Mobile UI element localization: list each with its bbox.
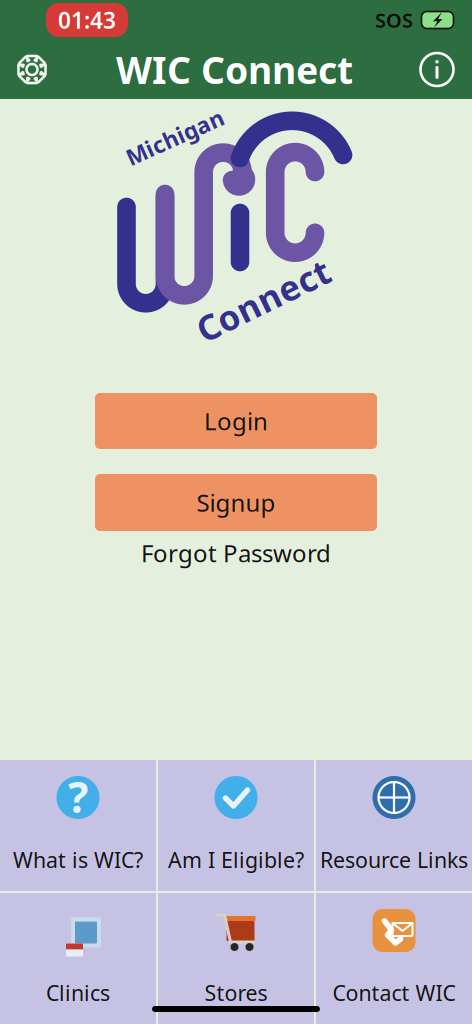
staticText: Michigan — [122, 122, 227, 152]
staticText: WIC Connect — [116, 45, 353, 94]
staticText: Signup — [196, 487, 275, 518]
staticText: Resource Links — [320, 846, 468, 874]
staticText: 01:43 — [58, 5, 116, 35]
button[interactable]: Resource Links — [316, 760, 472, 891]
button[interactable]: Forgot Password — [141, 534, 331, 572]
staticText: ? — [68, 768, 88, 825]
button[interactable]: Signup — [95, 474, 377, 531]
button[interactable]: ? — [0, 760, 156, 891]
staticText: What is WIC? — [13, 846, 143, 874]
staticText: Connect — [191, 277, 335, 323]
staticText: Forgot Password — [141, 537, 331, 569]
button[interactable]: Information — [412, 42, 472, 96]
staticText: Am I Eligible? — [168, 846, 304, 874]
button[interactable]: Am I Eligible? — [158, 760, 314, 891]
staticText: Stores — [204, 979, 267, 1007]
staticText: SOS — [375, 7, 413, 33]
button[interactable]: Stores — [158, 893, 314, 1024]
button[interactable]: Settings — [0, 42, 57, 96]
staticText: Login — [204, 405, 268, 437]
button[interactable]: Contact WIC — [316, 893, 472, 1024]
button[interactable]: Login — [95, 393, 377, 449]
button[interactable]: Clinics — [0, 893, 156, 1024]
staticText: Contact WIC — [332, 979, 455, 1007]
staticText: Clinics — [46, 979, 110, 1007]
